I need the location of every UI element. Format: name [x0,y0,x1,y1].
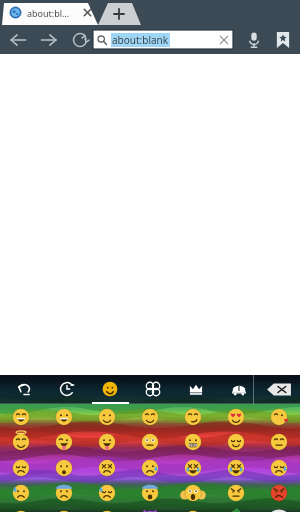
button[interactable]: Emoji [98,510,116,512]
button[interactable]: Backspace [266,382,292,397]
staticText: about:bl… [27,7,70,19]
button[interactable]: Emoji [55,408,73,426]
button[interactable]: Emoji [227,484,245,502]
button[interactable]: Smileys [99,378,121,400]
button[interactable]: Emoji [270,408,288,426]
button[interactable]: Emoji [270,510,288,512]
button[interactable]: about:blank [93,30,233,49]
button[interactable]: Emoji [98,408,116,426]
button[interactable]: Bookmark [270,27,296,53]
button[interactable]: Emoji [184,408,202,426]
button[interactable]: Emoji [184,484,202,502]
button[interactable]: Emoji [12,484,30,502]
button[interactable]: Emoji [55,459,73,477]
button[interactable]: Emoji [98,484,116,502]
button[interactable]: Emoji [141,408,159,426]
button[interactable]: Emoji [98,433,116,451]
button[interactable]: Emoji [12,408,30,426]
button[interactable]: Emoji [184,433,202,451]
button[interactable]: New tab [96,0,142,25]
button[interactable]: Travel [228,378,250,400]
staticText: about:blank [112,33,169,47]
button[interactable]: Emoji [270,459,288,477]
button[interactable]: Emoji [55,510,73,512]
button[interactable]: Emoji [270,484,288,502]
button[interactable]: Emoji [98,459,116,477]
button[interactable]: Emoji [141,459,159,477]
button[interactable]: Emoji [227,510,245,512]
button[interactable]: Voice search [241,27,267,53]
button[interactable]: Objects [185,378,207,400]
button[interactable]: Emoji [227,433,245,451]
button[interactable]: Emoji [141,433,159,451]
button[interactable]: Emoji [184,459,202,477]
button[interactable]: Emoji [55,484,73,502]
button[interactable]: about:blank tab [0,0,100,25]
button[interactable]: Emoji [12,510,30,512]
button[interactable]: Emoji [227,459,245,477]
button[interactable]: Recent [56,378,78,400]
button[interactable]: Undo [13,378,35,400]
button[interactable]: Emoji [227,408,245,426]
button[interactable]: Emoji [141,484,159,502]
button[interactable]: Close tab [80,5,95,20]
button[interactable]: Emoji [270,433,288,451]
button[interactable]: Emoji [12,433,30,451]
button[interactable]: Nature [142,378,164,400]
button[interactable]: Reload [67,27,93,53]
button[interactable]: Back [5,27,31,53]
button[interactable]: Emoji [12,459,30,477]
button[interactable]: Emoji [184,510,202,512]
button[interactable]: Emoji [141,510,159,512]
button[interactable]: Forward [36,27,62,53]
button[interactable]: Emoji [55,433,73,451]
